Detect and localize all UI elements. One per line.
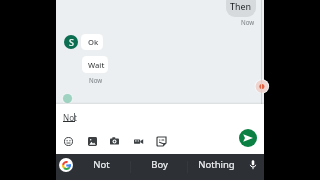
button[interactable]: Gallery (84, 133, 100, 149)
button[interactable]: Google (59, 158, 73, 172)
button[interactable]: Nothing (188, 154, 244, 180)
staticText: Not (93, 158, 110, 171)
button[interactable]: Voice input (246, 158, 260, 172)
button[interactable]: Ok (81, 34, 103, 50)
staticText: Not (63, 112, 77, 123)
button[interactable]: Emoji (60, 133, 76, 149)
staticText: Now (241, 18, 255, 26)
staticText: Now (89, 76, 103, 84)
button[interactable]: Send (239, 129, 257, 147)
button[interactable]: Boy (131, 154, 187, 180)
staticText: S (69, 36, 74, 48)
staticText: Ok (88, 37, 99, 47)
button[interactable]: Not (73, 154, 129, 180)
button[interactable]: Sticker (153, 133, 169, 149)
staticText: Then (230, 1, 252, 13)
staticText: Boy (151, 158, 168, 171)
staticText: Nothing (198, 158, 235, 171)
button[interactable]: Video (130, 133, 146, 149)
button[interactable]: Camera (106, 133, 122, 149)
button[interactable]: Then (226, 0, 256, 17)
staticText: Wait (88, 60, 105, 70)
button[interactable]: Wait (82, 56, 108, 73)
